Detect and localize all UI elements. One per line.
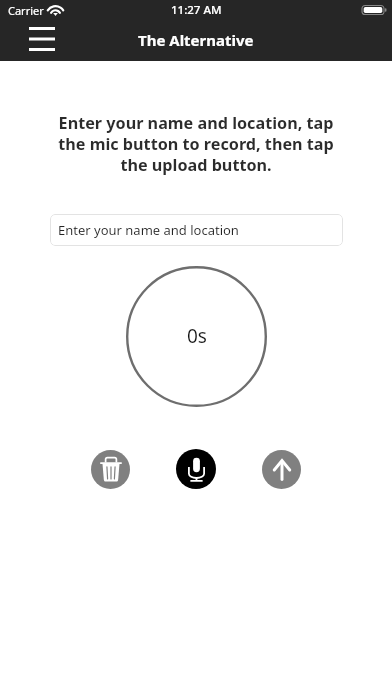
button[interactable]: Record — [176, 449, 216, 489]
staticText: 0s — [187, 323, 207, 349]
staticText: Enter your name and location — [58, 221, 239, 239]
staticText: Enter your name and location, tap the mi… — [0, 112, 392, 176]
staticText: The Alternative — [138, 30, 254, 50]
button[interactable]: Delete — [91, 450, 130, 489]
staticText: 11:27 AM — [171, 2, 222, 18]
button[interactable]: Enter your name and location — [50, 214, 343, 246]
button[interactable]: Menu — [20, 19, 63, 59]
button[interactable]: Upload — [262, 450, 301, 489]
staticText: Carrier — [8, 3, 44, 18]
